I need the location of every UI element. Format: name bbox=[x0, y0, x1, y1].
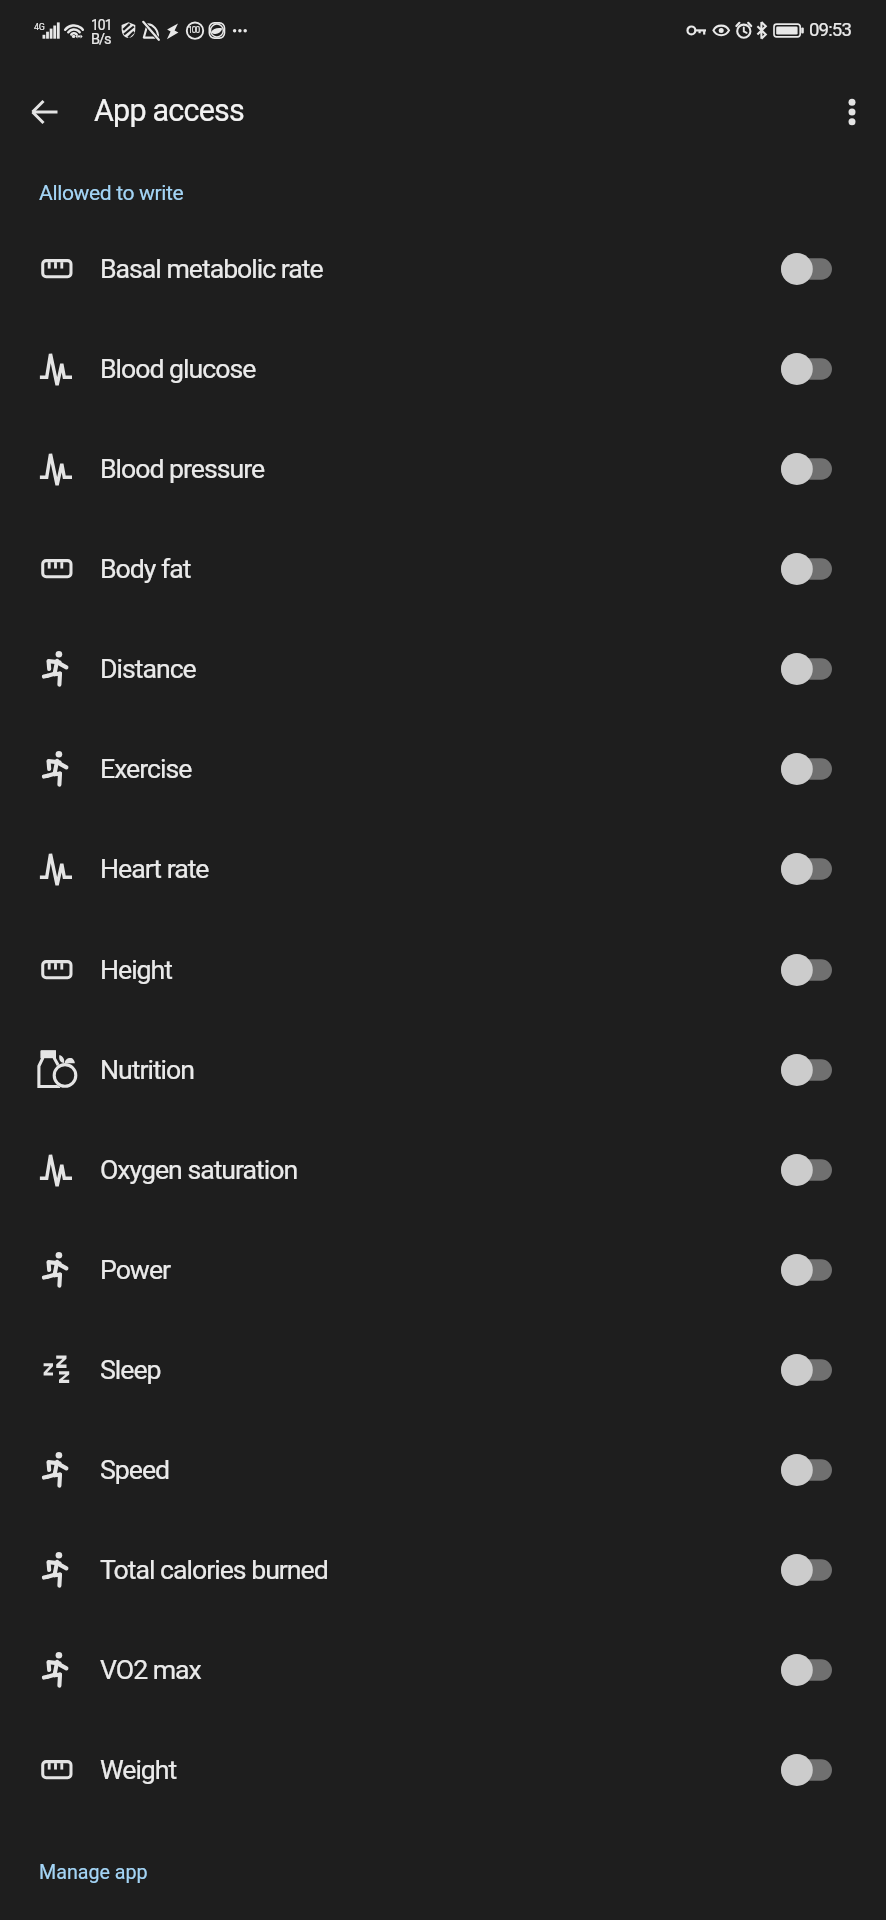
staticText: App access bbox=[94, 93, 244, 129]
staticText: Weight bbox=[100, 1754, 177, 1785]
button[interactable]: Toggle Heart rate bbox=[772, 844, 840, 894]
button[interactable]: Body fat bbox=[0, 519, 886, 619]
button[interactable]: Toggle Basal metabolic rate bbox=[772, 244, 840, 294]
staticText: Distance bbox=[100, 653, 196, 684]
button[interactable]: Speed bbox=[0, 1420, 886, 1520]
staticText: Allowed to write bbox=[39, 180, 184, 205]
staticText: Body fat bbox=[100, 553, 191, 584]
staticText: Heart rate bbox=[100, 853, 209, 884]
button[interactable]: Toggle Height bbox=[772, 945, 840, 995]
button[interactable]: Weight bbox=[0, 1720, 886, 1820]
button[interactable]: Exercise bbox=[0, 719, 886, 819]
staticText: Total calories burned bbox=[100, 1554, 328, 1585]
button[interactable]: VO2 max bbox=[0, 1620, 886, 1720]
button[interactable]: Blood glucose bbox=[0, 319, 886, 419]
staticText: VO2 max bbox=[100, 1654, 201, 1685]
button[interactable]: Toggle Total calories burned bbox=[772, 1545, 840, 1595]
button[interactable]: Toggle Nutrition bbox=[772, 1045, 840, 1095]
button[interactable]: Toggle Weight bbox=[772, 1745, 840, 1795]
button[interactable]: Oxygen saturation bbox=[0, 1120, 886, 1220]
staticText: 4G bbox=[34, 22, 45, 32]
staticText: Manage app bbox=[39, 1861, 148, 1884]
button[interactable]: Height bbox=[0, 920, 886, 1020]
staticText: Sleep bbox=[100, 1354, 161, 1385]
button[interactable]: Toggle Power bbox=[772, 1245, 840, 1295]
button[interactable]: Toggle Body fat bbox=[772, 544, 840, 594]
staticText: Blood pressure bbox=[100, 453, 265, 484]
button[interactable]: Heart rate bbox=[0, 819, 886, 919]
button[interactable]: Toggle VO2 max bbox=[772, 1645, 840, 1695]
staticText: Height bbox=[100, 954, 172, 985]
staticText: Blood glucose bbox=[100, 353, 256, 384]
button[interactable]: Distance bbox=[0, 619, 886, 719]
button[interactable]: Manage app bbox=[39, 1861, 148, 1884]
button[interactable]: Sleep bbox=[0, 1320, 886, 1420]
staticText: Oxygen saturation bbox=[100, 1154, 298, 1185]
button[interactable]: Toggle Sleep bbox=[772, 1345, 840, 1395]
button[interactable]: More options bbox=[824, 84, 879, 139]
button[interactable]: Back bbox=[17, 84, 72, 139]
staticText: Nutrition bbox=[100, 1054, 195, 1085]
staticText: Exercise bbox=[100, 753, 192, 784]
staticText: Power bbox=[100, 1254, 171, 1285]
staticText: 100 bbox=[188, 25, 200, 35]
button[interactable]: Toggle Oxygen saturation bbox=[772, 1145, 840, 1195]
button[interactable]: Basal metabolic rate bbox=[0, 219, 886, 319]
staticText: Basal metabolic rate bbox=[100, 253, 323, 284]
button[interactable]: Toggle Speed bbox=[772, 1445, 840, 1495]
staticText: 09:53 bbox=[809, 19, 852, 41]
button[interactable]: Toggle Blood pressure bbox=[772, 444, 840, 494]
button[interactable]: Blood pressure bbox=[0, 419, 886, 519]
button[interactable]: Toggle Exercise bbox=[772, 744, 840, 794]
staticText: Speed bbox=[100, 1454, 170, 1485]
staticText: B/s bbox=[91, 30, 111, 47]
staticText: 101 bbox=[91, 17, 112, 33]
button[interactable]: Toggle Distance bbox=[772, 644, 840, 694]
button[interactable]: Power bbox=[0, 1220, 886, 1320]
button[interactable]: Toggle Blood glucose bbox=[772, 344, 840, 394]
button[interactable]: Nutrition bbox=[0, 1020, 886, 1120]
button[interactable]: Total calories burned bbox=[0, 1520, 886, 1620]
